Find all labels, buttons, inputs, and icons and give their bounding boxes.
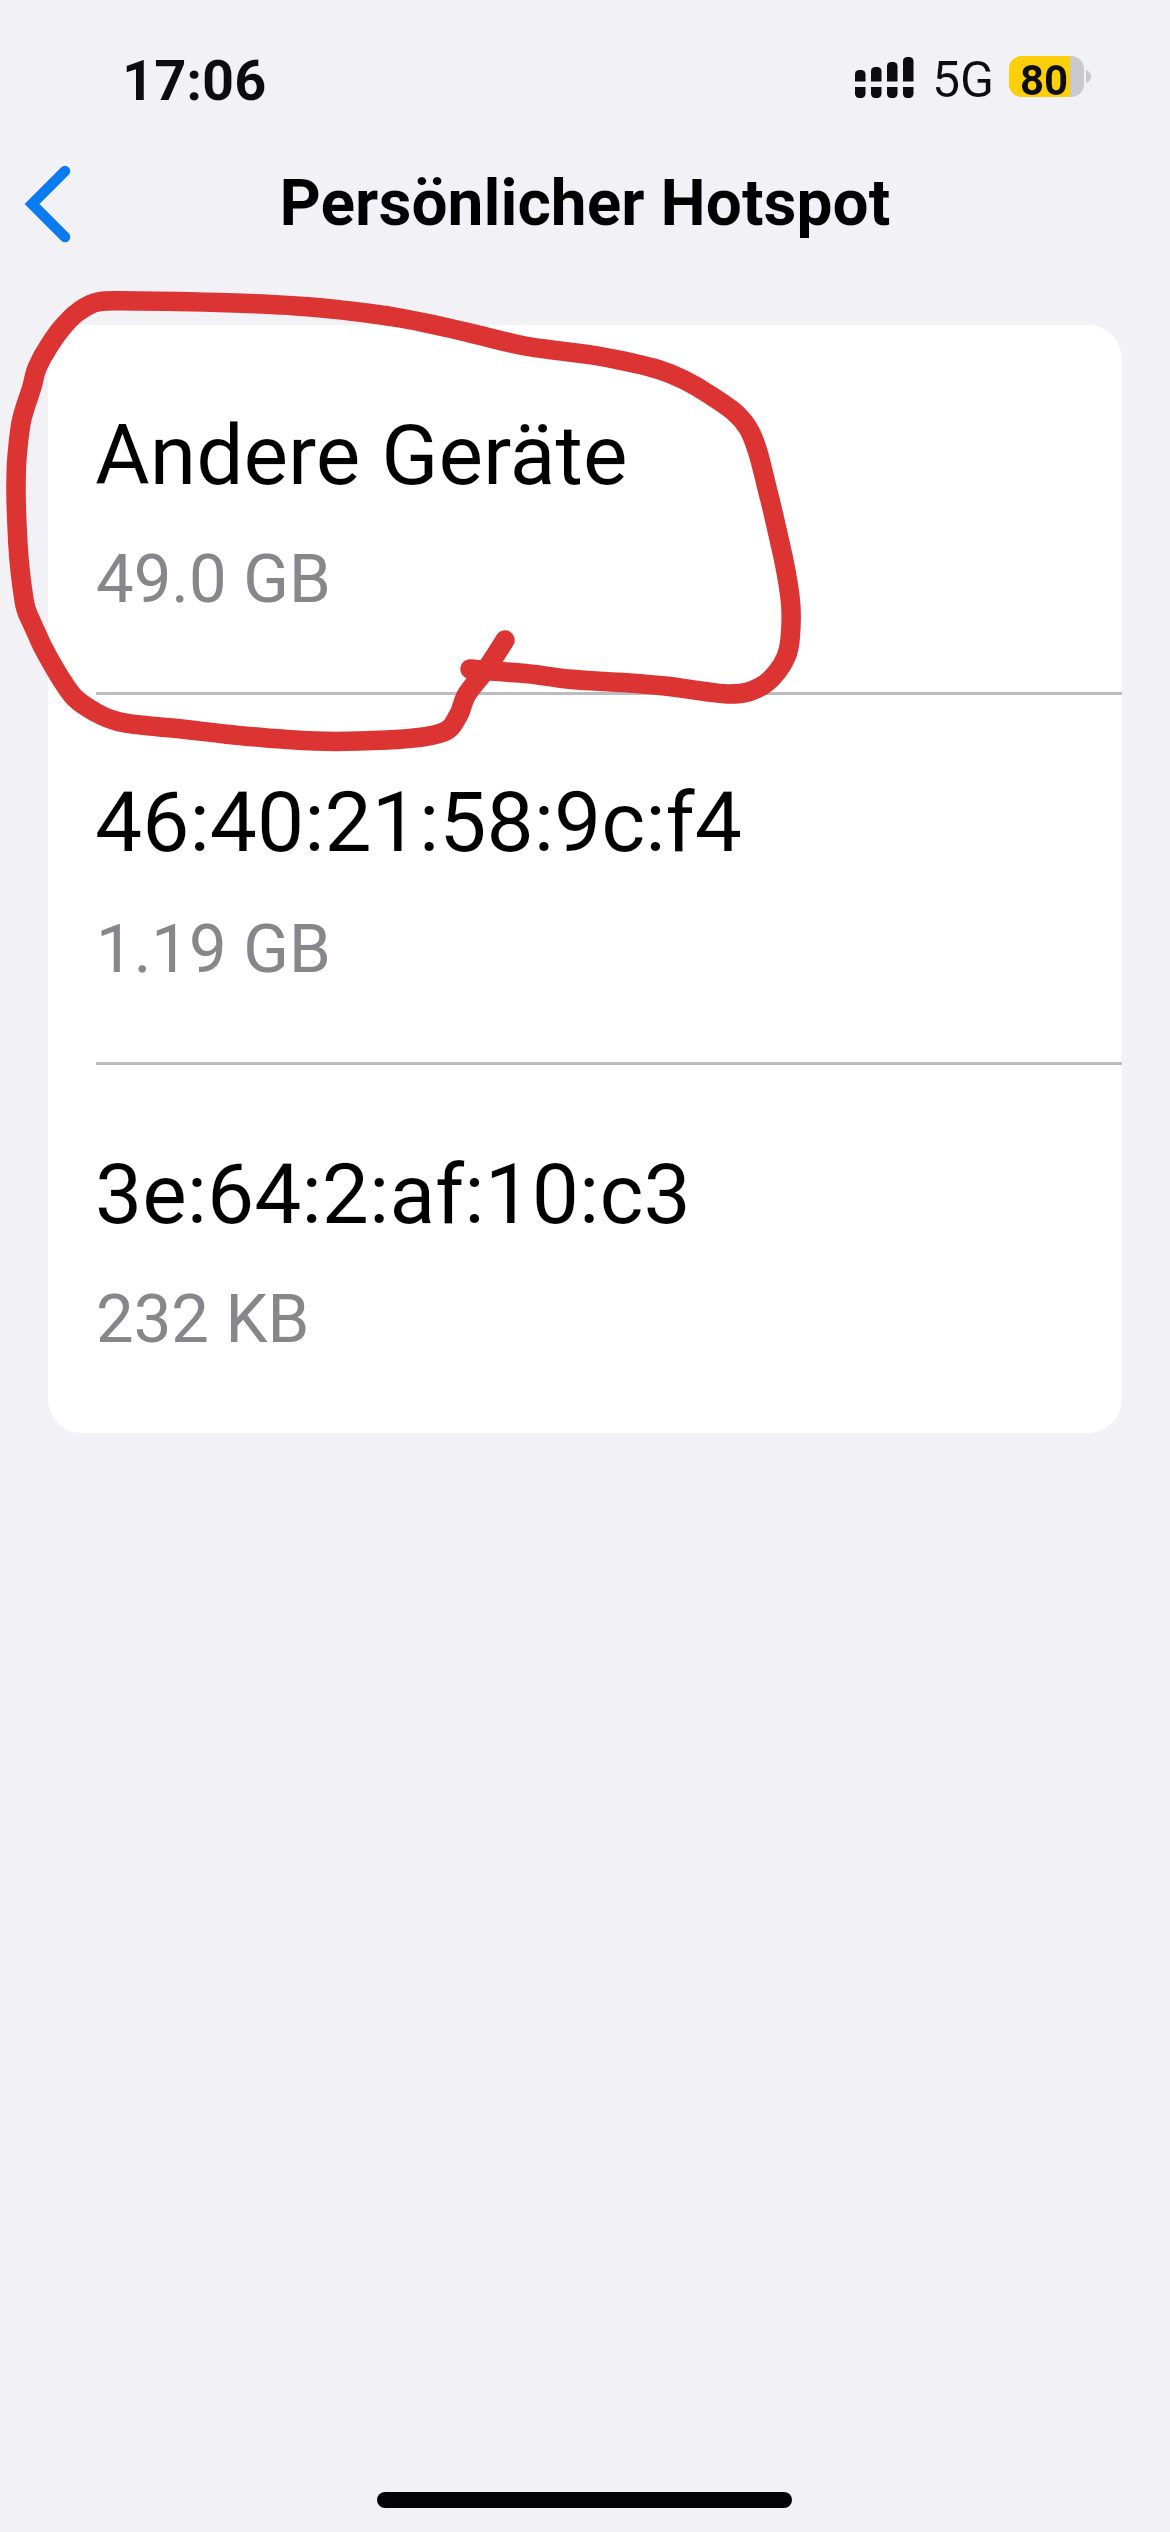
staticText: 3e:64:2:af:10:c3 <box>95 1145 691 1243</box>
staticText: Andere Geräte <box>95 406 628 504</box>
staticText: 49.0 GB <box>96 540 331 619</box>
staticText: 46:40:21:58:9c:f4 <box>95 773 742 871</box>
staticText: 232 KB <box>96 1280 310 1359</box>
staticText: 1.19 GB <box>96 910 331 989</box>
button[interactable]: 3e:64:2:af:10:c3 <box>48 1064 1122 1433</box>
staticText: Persönlicher Hotspot <box>0 166 1170 241</box>
staticText: 17:06 <box>122 48 267 114</box>
staticText: 5G <box>932 51 995 110</box>
staticText: 80 <box>1020 56 1069 97</box>
button[interactable]: Andere Geräte <box>48 325 1122 693</box>
button[interactable]: 46:40:21:58:9c:f4 <box>48 692 1122 1062</box>
button[interactable]: Zurück <box>0 148 110 258</box>
